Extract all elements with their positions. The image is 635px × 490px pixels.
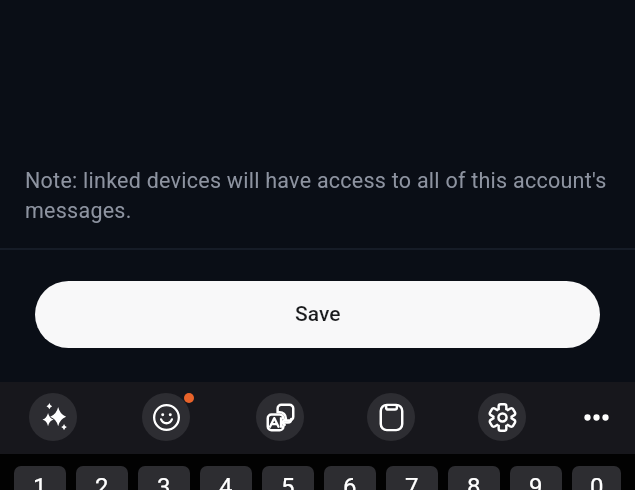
button[interactable]: 9 (510, 466, 562, 490)
staticText: 7 (405, 473, 419, 490)
button[interactable]: 6 (324, 466, 376, 490)
button[interactable]: 8 (448, 466, 500, 490)
staticText: 5 (281, 473, 295, 490)
button[interactable]: 1 (14, 466, 66, 490)
button[interactable]: Stickers (142, 393, 190, 441)
staticText: 4 (219, 473, 233, 490)
staticText: Note: linked devices will have access to… (25, 168, 611, 223)
button[interactable]: 7 (386, 466, 438, 490)
staticText: Save (295, 302, 341, 327)
button[interactable]: 2 (76, 466, 128, 490)
button[interactable]: More options (574, 395, 619, 440)
button[interactable]: 0 (572, 466, 621, 490)
button[interactable]: 3 (138, 466, 190, 490)
button[interactable]: Settings (478, 393, 526, 441)
button[interactable]: 5 (262, 466, 314, 490)
staticText: 2 (95, 473, 109, 490)
staticText: 0 (590, 473, 604, 490)
button[interactable]: Save (35, 281, 600, 348)
button[interactable]: 4 (200, 466, 252, 490)
button[interactable]: AI assist (29, 393, 77, 441)
button[interactable]: Translate (256, 393, 304, 441)
staticText: 3 (157, 473, 171, 490)
staticText: 1 (33, 473, 47, 490)
staticText: 9 (529, 473, 543, 490)
staticText: 6 (343, 473, 357, 490)
button[interactable]: Clipboard (367, 393, 415, 441)
staticText: 8 (467, 473, 481, 490)
